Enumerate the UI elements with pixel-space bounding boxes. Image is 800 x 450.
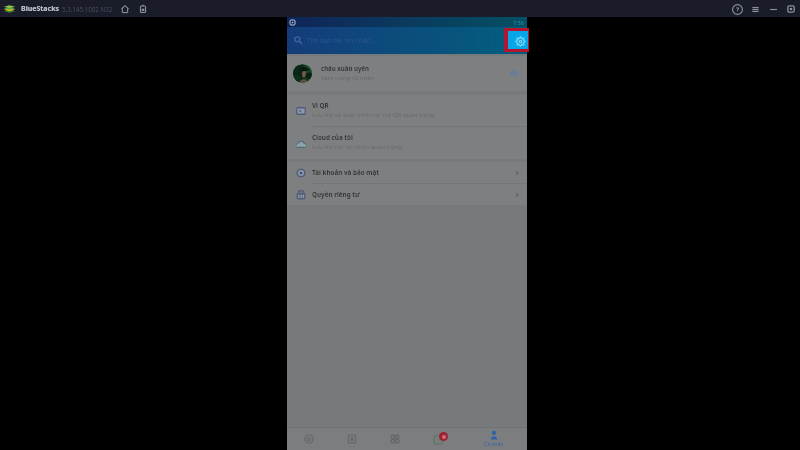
staticText: Ví QR bbox=[312, 101, 329, 110]
button[interactable]: Tin nhắn bbox=[287, 428, 330, 450]
button[interactable]: Home bbox=[119, 3, 131, 15]
button[interactable]: Danh bạ bbox=[330, 428, 373, 450]
button[interactable]: Ví QR bbox=[287, 95, 527, 126]
button[interactable]: Search bbox=[291, 33, 306, 48]
staticText: Cá nhân bbox=[484, 441, 504, 448]
button[interactable]: Close bbox=[785, 3, 797, 15]
button[interactable]: châu xuân uyên bbox=[287, 56, 527, 91]
button[interactable]: Settings bbox=[504, 28, 529, 52]
staticText: Cloud của tôi bbox=[312, 133, 353, 142]
button[interactable]: Cloud của tôi bbox=[287, 127, 527, 159]
staticText: Tìm bạn bè, tin nhắn... bbox=[307, 36, 377, 45]
button[interactable]: Multi instance manager bbox=[137, 3, 149, 15]
button[interactable]: Menu bbox=[749, 3, 761, 15]
button[interactable]: Quyền riêng tư bbox=[287, 184, 527, 205]
staticText: 5.3.145.1002 N32 bbox=[62, 5, 113, 13]
staticText: Lưu trữ và xuất trình các mã QR quan trọ… bbox=[312, 111, 435, 119]
button[interactable]: Help bbox=[731, 3, 743, 15]
button[interactable]: Cá nhân bbox=[461, 428, 527, 450]
button[interactable]: Edit profile bbox=[506, 66, 521, 81]
staticText: Quyền riêng tư bbox=[312, 190, 360, 199]
button[interactable]: Minimize bbox=[767, 3, 779, 15]
button[interactable]: Nhật ký bbox=[417, 428, 461, 450]
staticText: châu xuân uyên bbox=[321, 64, 370, 72]
staticText: BlueStacks bbox=[21, 4, 60, 14]
button[interactable]: Khám phá bbox=[373, 428, 417, 450]
button[interactable]: Tài khoản và bảo mật bbox=[287, 162, 527, 183]
staticText: Lưu trữ các tin nhắn quan trọng bbox=[312, 143, 403, 151]
staticText: Tài khoản và bảo mật bbox=[312, 168, 379, 177]
staticText: Xem trang cá nhân bbox=[321, 74, 375, 82]
staticText: 7:56 bbox=[513, 19, 524, 26]
